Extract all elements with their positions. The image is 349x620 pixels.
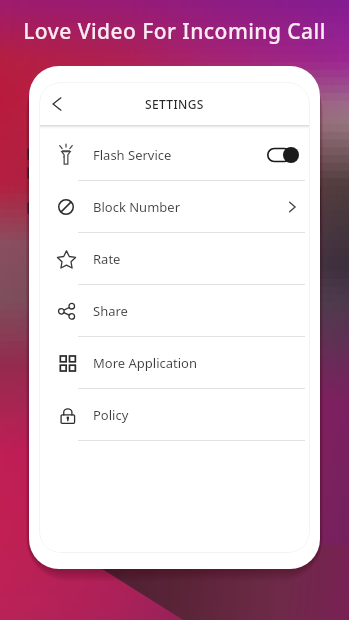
button[interactable]: Flash service toggle bbox=[267, 147, 299, 163]
button[interactable]: Flash Service bbox=[40, 129, 309, 181]
button[interactable]: Rate bbox=[40, 233, 309, 285]
staticText: Policy bbox=[93, 406, 129, 424]
button[interactable]: Share bbox=[40, 285, 309, 337]
button[interactable]: Block Number bbox=[40, 181, 309, 233]
staticText: Block Number bbox=[93, 198, 180, 216]
button[interactable]: Policy bbox=[40, 389, 309, 441]
button[interactable]: More Application bbox=[40, 337, 309, 389]
button[interactable]: Back bbox=[41, 88, 73, 120]
staticText: Love Video For Incoming Call bbox=[23, 17, 326, 46]
staticText: Share bbox=[93, 302, 128, 320]
staticText: SETTINGS bbox=[145, 96, 204, 112]
staticText: Rate bbox=[93, 250, 121, 268]
staticText: Flash Service bbox=[93, 146, 172, 164]
staticText: More Application bbox=[93, 354, 197, 372]
